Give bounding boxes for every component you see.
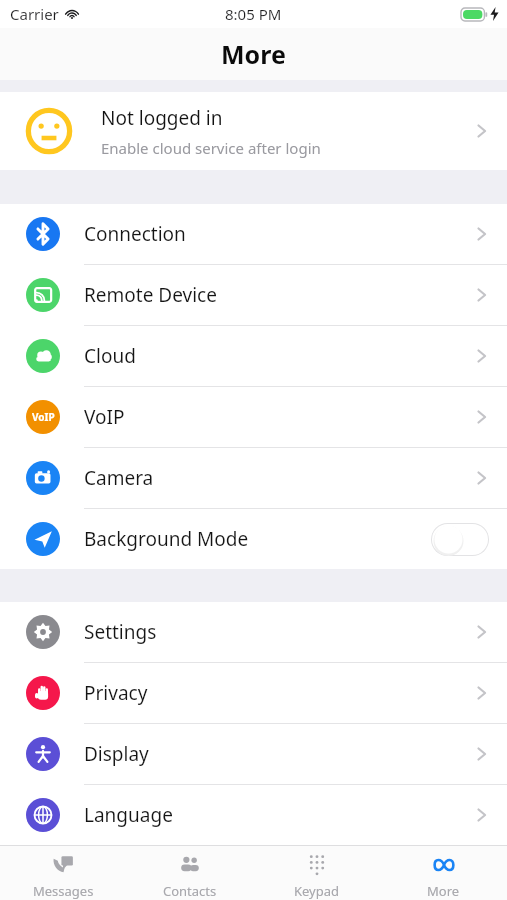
staticText: VoIP — [84, 404, 125, 430]
staticText: Display — [84, 741, 149, 767]
staticText: Keypad — [294, 882, 340, 900]
staticText: Contacts — [163, 882, 217, 900]
staticText: Camera — [84, 465, 154, 491]
staticText: Privacy — [84, 680, 148, 706]
staticText: Language — [84, 802, 173, 828]
button[interactable]: Remote Device — [0, 265, 507, 325]
staticText: Enable cloud service after login — [101, 138, 321, 158]
button[interactable]: Language — [0, 785, 507, 845]
staticText: Messages — [33, 882, 94, 900]
button[interactable]: Cloud — [0, 326, 507, 386]
button[interactable]: Privacy — [0, 663, 507, 723]
button[interactable]: Messages — [0, 846, 126, 900]
staticText: Settings — [84, 619, 157, 645]
button[interactable]: Camera — [0, 448, 507, 508]
staticText: Background Mode — [84, 526, 249, 552]
staticText: Cloud — [84, 343, 136, 369]
button[interactable]: Display — [0, 724, 507, 784]
button[interactable]: Connection — [0, 204, 507, 264]
staticText: More — [221, 37, 286, 71]
staticText: 8:05 PM — [225, 4, 282, 24]
button[interactable]: Keypad — [253, 846, 380, 900]
staticText: Connection — [84, 221, 186, 247]
button[interactable]: Contacts — [126, 846, 253, 900]
button[interactable]: Not logged in — [0, 92, 507, 170]
staticText: Carrier — [10, 4, 59, 24]
staticText: VoIP — [32, 410, 55, 424]
button[interactable]: Background Mode toggle — [431, 523, 489, 556]
staticText: Remote Device — [84, 282, 217, 308]
button[interactable]: Settings — [0, 602, 507, 662]
staticText: More — [427, 882, 460, 900]
button[interactable]: Background Mode — [0, 509, 507, 569]
staticText: Not logged in — [101, 105, 223, 131]
button[interactable]: More — [380, 846, 507, 900]
button[interactable]: VoIP — [0, 387, 507, 447]
